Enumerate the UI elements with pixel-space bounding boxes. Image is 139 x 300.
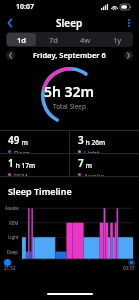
- staticText: Deep: [14, 149, 31, 153]
- staticText: 49: [8, 133, 20, 147]
- staticText: m: [20, 138, 28, 147]
- other: Sleep start: [4, 259, 11, 266]
- staticText: m: [84, 161, 92, 170]
- button[interactable]: 1: [0, 154, 69, 176]
- staticText: Deep: [7, 249, 19, 255]
- staticText: 21:52: [4, 265, 16, 271]
- staticText: 7d: [49, 35, 58, 45]
- staticText: Friday, September 6: [33, 50, 106, 60]
- staticText: REM: [14, 172, 28, 176]
- staticText: Awake: [5, 205, 19, 211]
- button[interactable]: More options: [119, 14, 139, 32]
- button[interactable]: 4w: [70, 33, 100, 46]
- staticText: 7: [78, 156, 84, 170]
- button[interactable]: 49: [0, 131, 69, 153]
- staticText: 5h 32m: [44, 82, 95, 101]
- button[interactable]: Back: [0, 14, 20, 32]
- staticText: Light: [8, 234, 19, 240]
- staticText: Sleep Timeline: [8, 185, 72, 197]
- button[interactable]: 3: [70, 131, 139, 153]
- staticText: 03:37: [123, 265, 135, 271]
- button[interactable]: 7: [70, 154, 139, 176]
- staticText: 3: [78, 133, 84, 147]
- staticText: REM: [9, 220, 19, 226]
- button[interactable]: Next day: [124, 51, 133, 60]
- staticText: h 26m: [84, 138, 106, 147]
- button[interactable]: 1y: [102, 33, 132, 46]
- button[interactable]: 7d: [38, 33, 68, 46]
- staticText: 10:07: [16, 2, 34, 12]
- staticText: Awake: [84, 172, 105, 176]
- staticText: 1: [8, 156, 14, 170]
- staticText: Sleep: [56, 16, 83, 30]
- staticText: h 17m: [14, 161, 36, 170]
- other: Sleep end: [128, 259, 135, 266]
- staticText: 1y: [113, 35, 122, 45]
- staticText: 1d: [17, 35, 26, 45]
- staticText: 4w: [80, 35, 91, 45]
- staticText: Total Sleep: [53, 102, 87, 111]
- button[interactable]: 1d: [7, 33, 36, 46]
- button[interactable]: Previous day: [6, 51, 15, 60]
- staticText: Light: [84, 149, 100, 153]
